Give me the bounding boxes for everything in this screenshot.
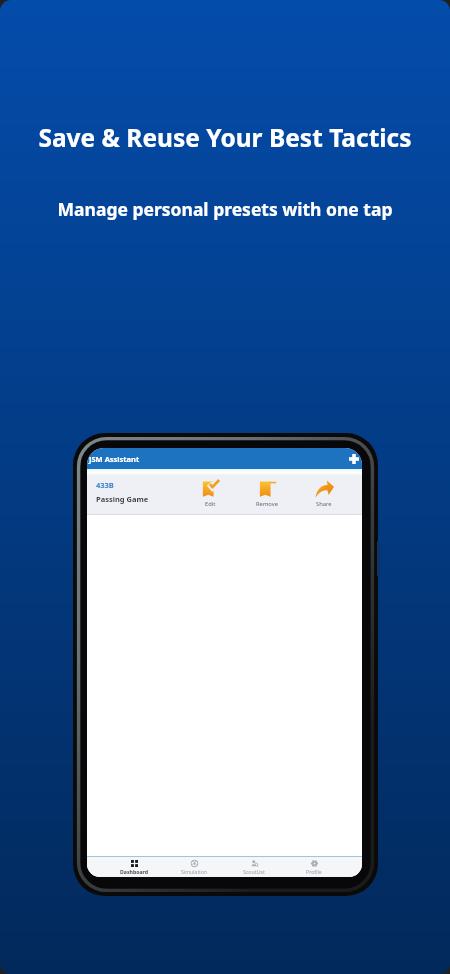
staticText: Share: [316, 500, 332, 508]
button[interactable]: Add preset: [346, 451, 361, 466]
staticText: Dashboard: [120, 868, 149, 875]
staticText: Simulation: [181, 868, 208, 875]
staticText: Manage personal presets with one tap: [0, 197, 450, 221]
staticText: JSM Assistant: [89, 454, 140, 464]
staticText: Passing Game: [96, 494, 149, 504]
button[interactable]: Simulation: [174, 857, 214, 877]
staticText: Save & Reuse Your Best Tactics: [0, 121, 450, 154]
button[interactable]: Profile: [294, 857, 334, 877]
staticText: Edit: [205, 500, 216, 508]
button[interactable]: Share: [307, 480, 341, 508]
button[interactable]: ScoutList: [234, 857, 274, 877]
staticText: Remove: [256, 500, 278, 508]
staticText: ScoutList: [243, 868, 265, 875]
button[interactable]: Dashboard: [114, 857, 154, 877]
button[interactable]: Remove: [250, 480, 284, 508]
staticText: Profile: [306, 868, 322, 875]
staticText: 433B: [96, 480, 114, 490]
button[interactable]: Edit: [193, 480, 227, 508]
button[interactable]: 433B: [87, 476, 362, 514]
